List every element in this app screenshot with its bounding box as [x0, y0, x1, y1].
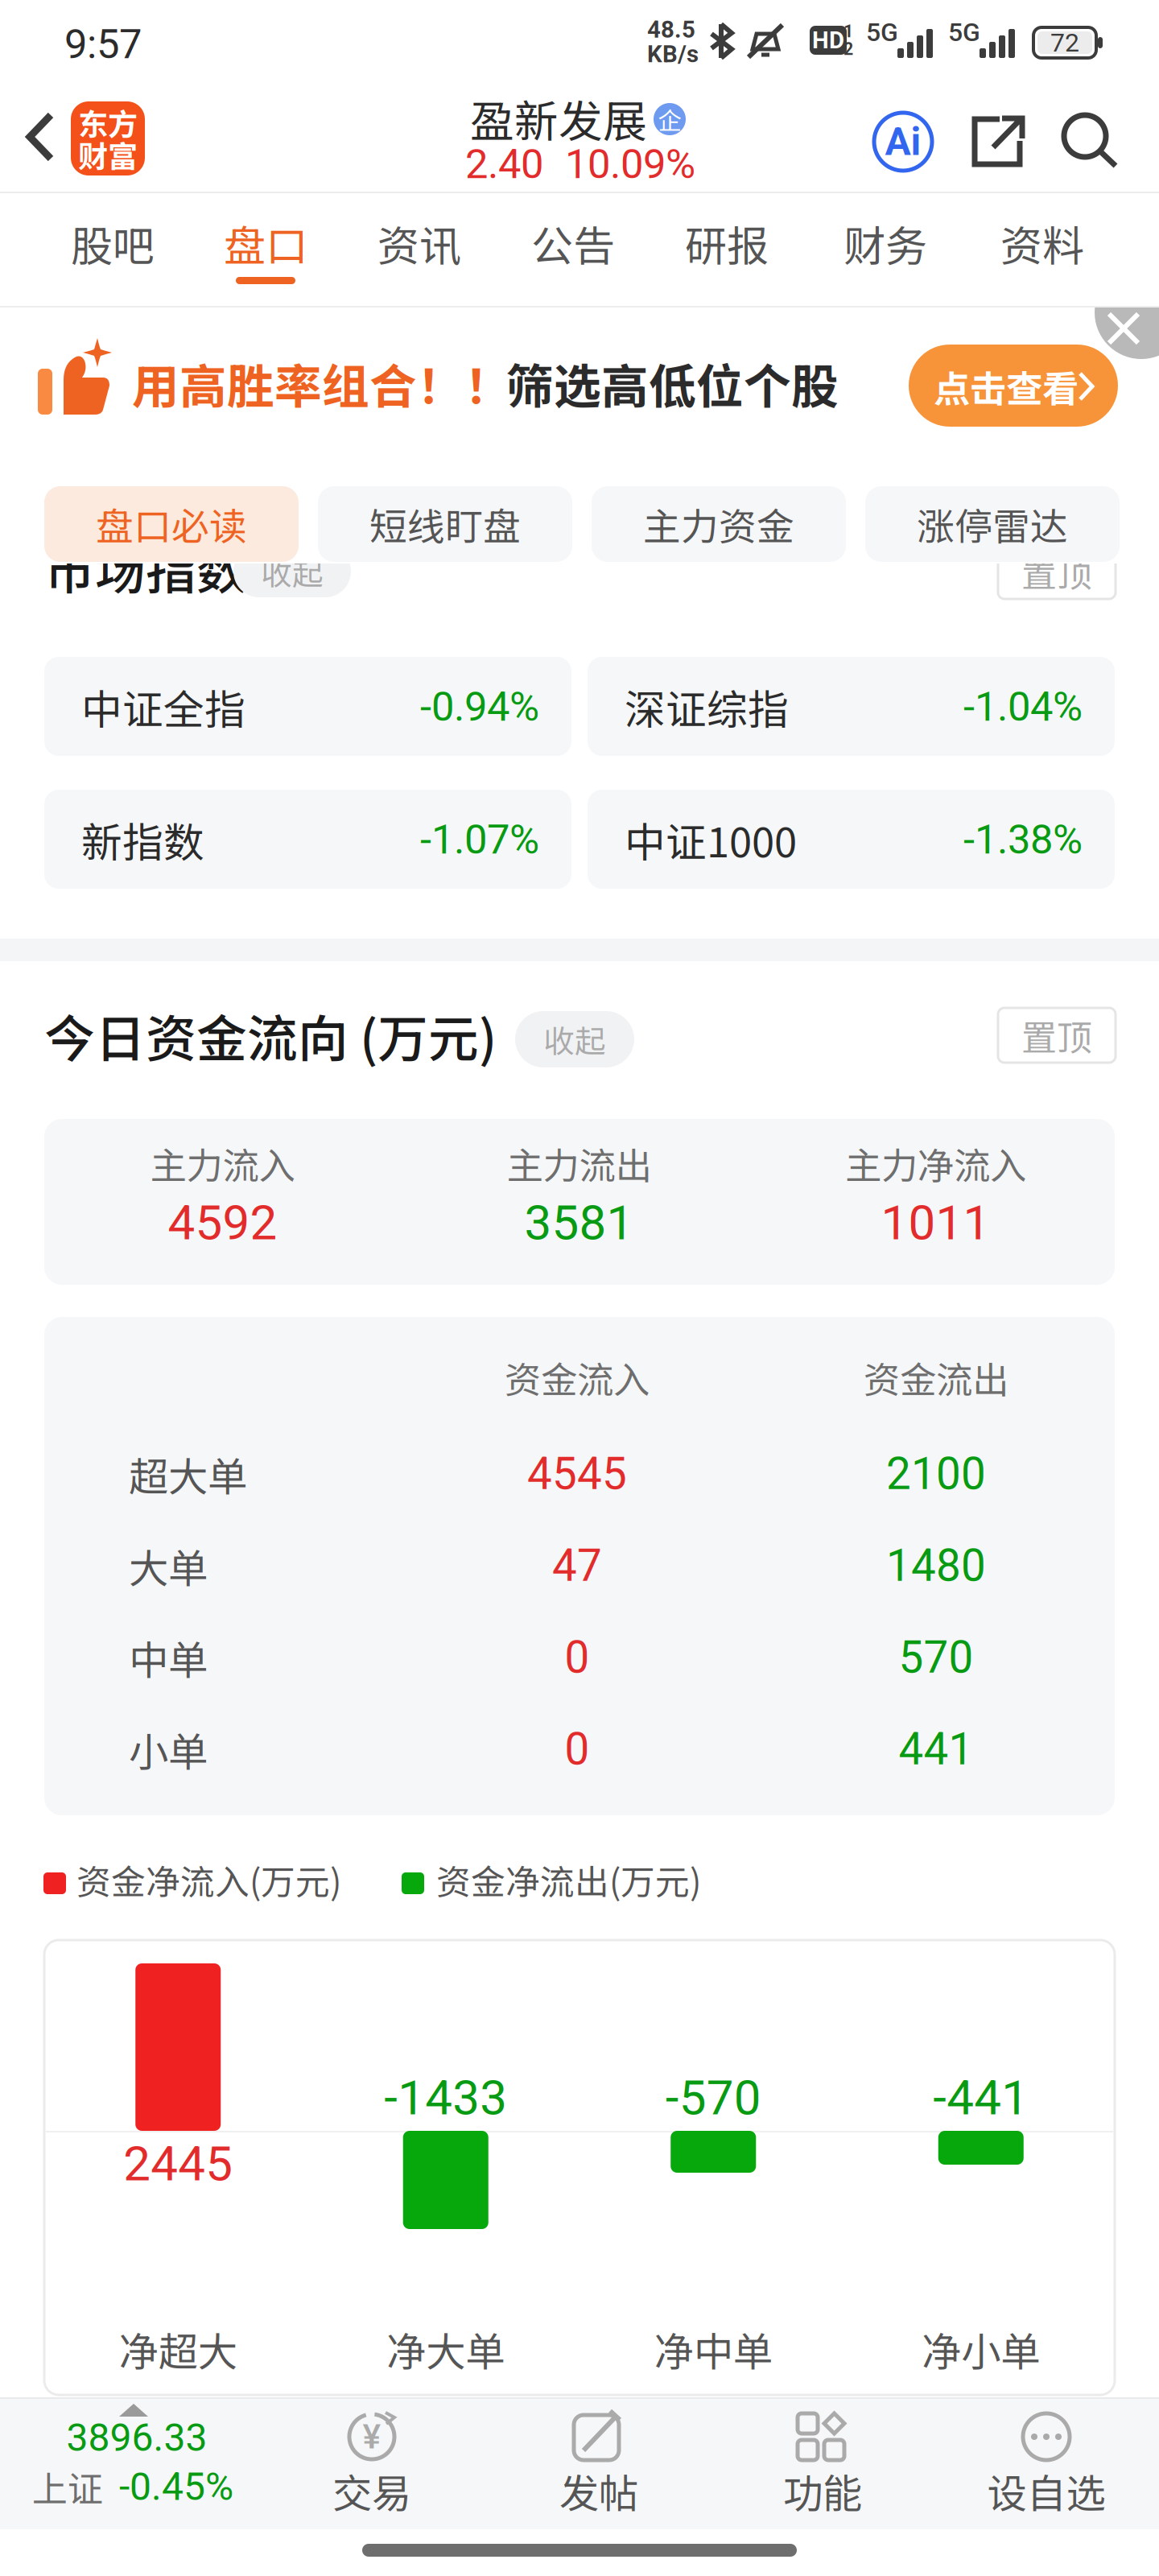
button[interactable]: 设自选 [940, 2399, 1153, 2526]
staticText: 净大单 [386, 2320, 505, 2378]
staticText: 2445 [123, 2136, 233, 2192]
button[interactable]: 用高胜率组合！！ [0, 308, 1159, 465]
staticText: 设自选 [987, 2462, 1105, 2519]
staticText: 交易 [332, 2462, 411, 2519]
staticText: -0.94% [420, 683, 539, 731]
staticText: 570 [899, 1632, 973, 1683]
staticText: 收起 [261, 549, 324, 594]
staticText: 新指数 [81, 810, 204, 869]
staticText: 盘口必读 [96, 497, 247, 551]
button[interactable]: 财务 [808, 195, 963, 308]
staticText: 资金净流出(万元) [436, 1855, 701, 1905]
staticText: 盘口 [224, 213, 307, 273]
button[interactable]: 股吧 [35, 195, 190, 308]
staticText: 4545 [527, 1448, 627, 1500]
button[interactable]: 功能 [716, 2399, 929, 2526]
button[interactable]: 3896.33 [8, 2401, 266, 2526]
button[interactable]: 收起 [515, 1011, 634, 1067]
staticText: 4592 [168, 1194, 277, 1251]
button[interactable]: 盘口 [188, 195, 343, 308]
staticText: 中证全指 [81, 677, 245, 736]
staticText: 净中单 [654, 2320, 773, 2378]
button[interactable]: 资料 [965, 195, 1120, 308]
staticText: 441 [899, 1724, 973, 1775]
staticText: 发帖 [559, 2462, 638, 2519]
staticText: 1 [843, 21, 853, 41]
staticText: 功能 [783, 2462, 862, 2519]
staticText: 中证1000 [625, 810, 797, 869]
staticText: 资讯 [377, 213, 461, 273]
button[interactable]: 研报 [650, 195, 804, 308]
staticText: 净超大 [119, 2320, 237, 2378]
staticText: 资金流出 [864, 1351, 1008, 1404]
staticText: 置顶 [1021, 1010, 1092, 1061]
staticText: 点击查看 [934, 360, 1079, 413]
button[interactable]: 分享 [971, 115, 1025, 168]
staticText: 盈新发展 [470, 86, 647, 150]
staticText: 企 [658, 102, 681, 136]
staticText: 财务 [843, 213, 927, 273]
staticText: 市场指数 [44, 531, 247, 604]
button[interactable]: 中证全指 [44, 657, 571, 756]
staticText: 9:57 [64, 20, 142, 68]
staticText: 主力流入 [150, 1137, 295, 1190]
button[interactable]: 盘口必读 [44, 486, 299, 562]
staticText: -1.04% [963, 683, 1083, 731]
staticText: ¥ [363, 2417, 381, 2457]
staticText: 10.09% [565, 140, 695, 188]
staticText: Ai [885, 119, 921, 164]
staticText: 0 [565, 1632, 590, 1683]
button[interactable]: AI 助手 [872, 111, 934, 172]
staticText: 2 [843, 39, 853, 59]
button[interactable]: 关闭 [1095, 266, 1159, 359]
button[interactable]: 涨停雷达 [865, 486, 1120, 562]
staticText: 今日资金流向 (万元) [44, 999, 497, 1072]
staticText: 主力资金 [643, 497, 794, 551]
staticText: 短线盯盘 [369, 497, 521, 551]
staticText: -441 [933, 2069, 1029, 2126]
button[interactable]: 搜索 [1064, 115, 1119, 168]
staticText: 净小单 [922, 2320, 1040, 2378]
staticText: 主力流出 [507, 1137, 652, 1190]
button[interactable]: ¥ [266, 2399, 478, 2526]
button[interactable]: 短线盯盘 [318, 486, 572, 562]
staticText: 资金流入 [505, 1351, 650, 1404]
button[interactable]: 返回 [21, 98, 166, 179]
staticText: 3896.33 [66, 2415, 207, 2460]
staticText: 用高胜率组合！！ [132, 349, 512, 417]
button[interactable]: 公告 [496, 195, 650, 308]
staticText: 2100 [886, 1448, 986, 1500]
staticText: 筛选高低位个股 [506, 349, 839, 417]
staticText: 小单 [129, 1721, 208, 1778]
staticText: -0.45% [119, 2464, 233, 2509]
staticText: 涨停雷达 [917, 497, 1068, 551]
staticText: 超大单 [129, 1445, 247, 1503]
staticText: 上证 [32, 2461, 103, 2512]
staticText: 1011 [881, 1194, 990, 1251]
staticText: -1.07% [420, 816, 539, 864]
button[interactable]: 深证综指 [588, 657, 1115, 756]
staticText: 公告 [531, 213, 615, 273]
staticText: 资料 [1000, 213, 1084, 273]
staticText: 置顶 [1021, 546, 1092, 597]
staticText: 收起 [543, 1017, 606, 1062]
staticText: -1433 [384, 2069, 507, 2126]
staticText: 5G [866, 17, 898, 47]
staticText: 研报 [685, 213, 769, 273]
staticText: 47 [552, 1540, 602, 1592]
staticText: -1.38% [963, 816, 1083, 864]
button[interactable]: 新指数 [44, 790, 571, 889]
button[interactable]: 发帖 [493, 2399, 705, 2526]
button[interactable]: 主力资金 [592, 486, 846, 562]
button[interactable]: 中证1000 [588, 790, 1115, 889]
staticText: 0 [565, 1724, 590, 1775]
button[interactable]: 置顶 [998, 1008, 1116, 1063]
button[interactable]: 资讯 [342, 195, 497, 308]
staticText: 股吧 [71, 213, 155, 273]
staticText: 大单 [129, 1537, 208, 1594]
staticText: 深证综指 [625, 677, 789, 736]
staticText: 主力净流入 [845, 1137, 1026, 1190]
staticText: 东方 [78, 101, 138, 144]
staticText: 2.40 [465, 140, 543, 188]
staticText: 1480 [886, 1540, 986, 1592]
